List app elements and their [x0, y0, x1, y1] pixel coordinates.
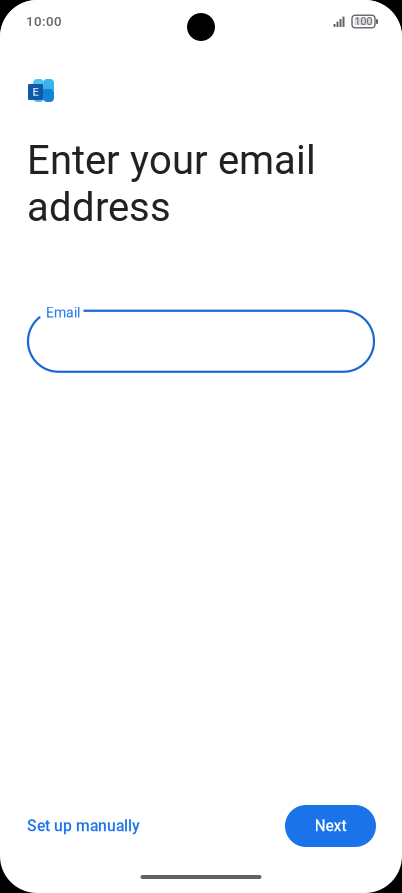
button[interactable]: Set up manually — [25, 804, 142, 848]
staticText: 10:00 — [26, 14, 62, 29]
staticText: Set up manually — [27, 817, 140, 835]
button[interactable]: Next — [285, 805, 376, 847]
staticText: E — [32, 86, 38, 98]
staticText: Email — [46, 304, 80, 321]
staticText: Enter your email address — [27, 137, 316, 231]
staticText: Next — [314, 817, 346, 835]
staticText: 100 — [354, 15, 372, 28]
button[interactable]: Email — [27, 310, 375, 373]
